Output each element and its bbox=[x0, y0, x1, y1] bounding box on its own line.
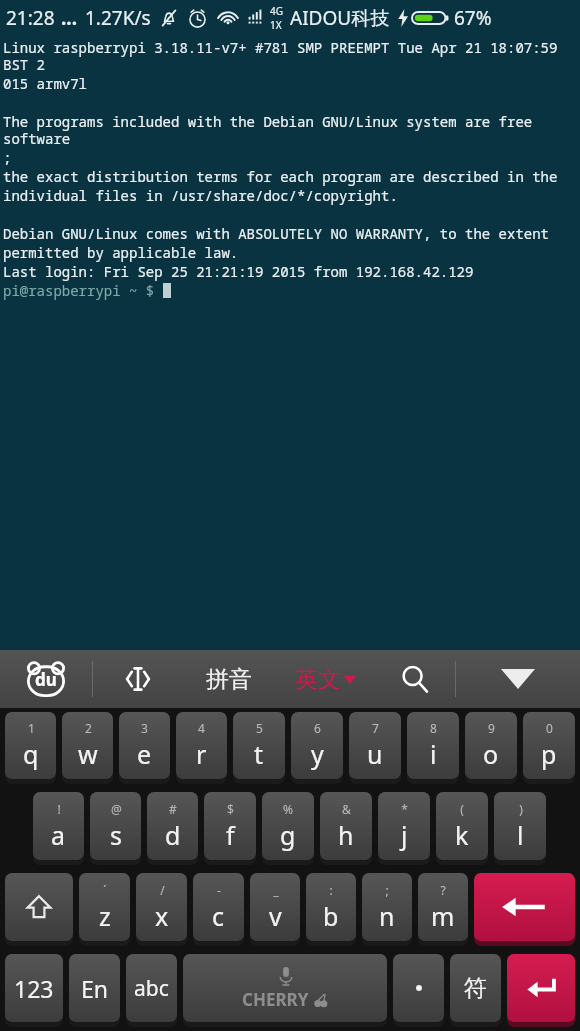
staticText: AIDOU科技 bbox=[290, 5, 390, 31]
staticText: # bbox=[169, 801, 177, 817]
staticText: 67% bbox=[454, 5, 492, 31]
button[interactable]: h bbox=[320, 792, 372, 860]
staticText: the exact distribution terms for each pr… bbox=[3, 167, 558, 186]
staticText: g bbox=[280, 818, 296, 852]
staticText: Debian GNU/Linux comes with ABSOLUTELY N… bbox=[3, 224, 549, 243]
button[interactable]: u bbox=[349, 712, 401, 779]
staticText: 0 bbox=[546, 720, 553, 736]
staticText: 1 bbox=[28, 720, 35, 736]
button[interactable]: 英文 bbox=[275, 650, 375, 708]
staticText: r bbox=[196, 737, 207, 771]
button[interactable]: Enter bbox=[507, 954, 575, 1022]
button[interactable]: z bbox=[79, 873, 130, 941]
button[interactable]: 123 bbox=[5, 954, 63, 1022]
staticText: i bbox=[430, 737, 437, 771]
staticText: c bbox=[212, 899, 225, 933]
staticText: l bbox=[517, 818, 524, 852]
button[interactable]: Shift bbox=[5, 873, 73, 941]
staticText: CHERRY bbox=[242, 988, 309, 1011]
staticText: y bbox=[311, 737, 324, 771]
button[interactable]: s bbox=[90, 792, 141, 860]
staticText: 3 bbox=[141, 720, 148, 736]
staticText: _ bbox=[273, 882, 279, 898]
staticText: 6 bbox=[314, 720, 321, 736]
button[interactable]: q bbox=[5, 712, 56, 779]
staticText: % bbox=[283, 801, 293, 817]
staticText: m bbox=[431, 899, 455, 933]
button[interactable]: f bbox=[204, 792, 256, 860]
staticText: z bbox=[99, 899, 111, 933]
button[interactable]: b bbox=[306, 873, 356, 941]
staticText: 7 bbox=[372, 720, 379, 736]
staticText: 21:28 bbox=[6, 5, 55, 31]
staticText: ; bbox=[3, 148, 12, 167]
button[interactable]: Symbols bbox=[450, 954, 501, 1022]
staticText: * bbox=[401, 801, 408, 817]
button[interactable]: l bbox=[494, 792, 546, 860]
button[interactable]: Period bbox=[393, 954, 444, 1022]
staticText: ´ bbox=[103, 882, 107, 898]
staticText: du bbox=[35, 668, 57, 691]
button[interactable]: Backspace bbox=[474, 873, 575, 941]
staticText: 英文 bbox=[295, 665, 341, 694]
staticText: abc bbox=[134, 974, 169, 1003]
staticText: w bbox=[78, 737, 98, 771]
button[interactable]: o bbox=[465, 712, 517, 779]
staticText: @ bbox=[111, 801, 122, 817]
staticText: The programs included with the Debian GN… bbox=[3, 112, 580, 148]
button[interactable]: c bbox=[193, 873, 244, 941]
staticText: 9 bbox=[488, 720, 495, 736]
staticText: 拼音 bbox=[206, 665, 252, 694]
staticText: - bbox=[217, 882, 221, 898]
button[interactable]: Hide keyboard bbox=[456, 650, 580, 708]
button[interactable]: n bbox=[362, 873, 412, 941]
button[interactable]: t bbox=[233, 712, 285, 779]
staticText: 4 bbox=[198, 720, 205, 736]
staticText: : bbox=[329, 882, 333, 898]
button[interactable]: d bbox=[147, 792, 198, 860]
button[interactable]: m bbox=[418, 873, 468, 941]
button[interactable]: Baidu input logo bbox=[0, 650, 92, 708]
staticText: / bbox=[160, 882, 165, 898]
staticText: En bbox=[81, 973, 109, 1004]
button[interactable]: a bbox=[33, 792, 84, 860]
staticText: permitted by applicable law. bbox=[3, 243, 239, 262]
button[interactable]: j bbox=[378, 792, 430, 860]
staticText: 1X bbox=[270, 18, 282, 32]
staticText: 123 bbox=[14, 973, 54, 1004]
staticText: ( bbox=[460, 801, 464, 817]
staticText: 1.27K/s bbox=[85, 5, 151, 31]
button[interactable]: k bbox=[436, 792, 488, 860]
button[interactable]: abc bbox=[126, 954, 177, 1022]
button[interactable]: y bbox=[291, 712, 343, 779]
staticText: s bbox=[110, 818, 122, 852]
button[interactable]: Search bbox=[375, 650, 455, 708]
staticText: q bbox=[23, 737, 39, 771]
button[interactable]: 拼音 bbox=[183, 650, 275, 708]
staticText: x bbox=[155, 899, 169, 933]
staticText: p bbox=[541, 737, 557, 771]
button[interactable]: Space bbox=[183, 954, 387, 1022]
staticText: & bbox=[342, 801, 351, 817]
staticText: 2 bbox=[85, 720, 92, 736]
staticText: 8 bbox=[430, 720, 437, 736]
button[interactable]: v bbox=[250, 873, 300, 941]
button[interactable]: Cursor move bbox=[93, 650, 183, 708]
button[interactable]: w bbox=[62, 712, 113, 779]
staticText: Linux raspberrypi 3.18.11-v7+ #781 SMP P… bbox=[3, 38, 580, 74]
button[interactable]: English bbox=[69, 954, 120, 1022]
button[interactable]: p bbox=[523, 712, 575, 779]
staticText: a bbox=[51, 818, 66, 852]
staticText: ! bbox=[57, 801, 61, 817]
button[interactable]: g bbox=[262, 792, 314, 860]
staticText: 5 bbox=[256, 720, 263, 736]
staticText: h bbox=[338, 818, 354, 852]
button[interactable]: e bbox=[119, 712, 170, 779]
staticText: t bbox=[254, 737, 264, 771]
staticText: ) bbox=[519, 801, 523, 817]
staticText: ; bbox=[385, 882, 389, 898]
button[interactable]: r bbox=[176, 712, 227, 779]
button[interactable]: i bbox=[407, 712, 459, 779]
button[interactable]: x bbox=[136, 873, 187, 941]
